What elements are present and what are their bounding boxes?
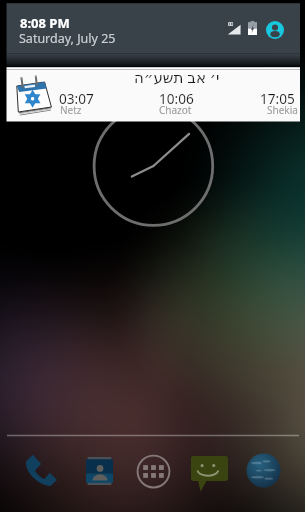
button[interactable]: Messaging bbox=[191, 454, 228, 492]
staticText: Shekia bbox=[267, 103, 298, 117]
staticText: י׳ אב תשע״ה bbox=[134, 67, 220, 87]
button[interactable]: Browser bbox=[246, 453, 281, 488]
staticText: Saturday, July 25 bbox=[19, 30, 116, 47]
button[interactable]: Contacts bbox=[86, 457, 113, 485]
staticText: 10:06 bbox=[159, 89, 194, 108]
staticText: Chazot bbox=[159, 103, 192, 117]
button[interactable]: Phone bbox=[24, 453, 57, 487]
staticText: 8:08 PM bbox=[20, 14, 70, 32]
staticText: Netz bbox=[60, 103, 82, 117]
button[interactable]: י׳ אב תשע״ה bbox=[7, 67, 301, 122]
staticText: 17:05 bbox=[260, 89, 295, 108]
button[interactable]: Apps bbox=[136, 454, 171, 489]
staticText: 03:07 bbox=[59, 89, 94, 108]
button[interactable]: User profile bbox=[266, 21, 284, 39]
